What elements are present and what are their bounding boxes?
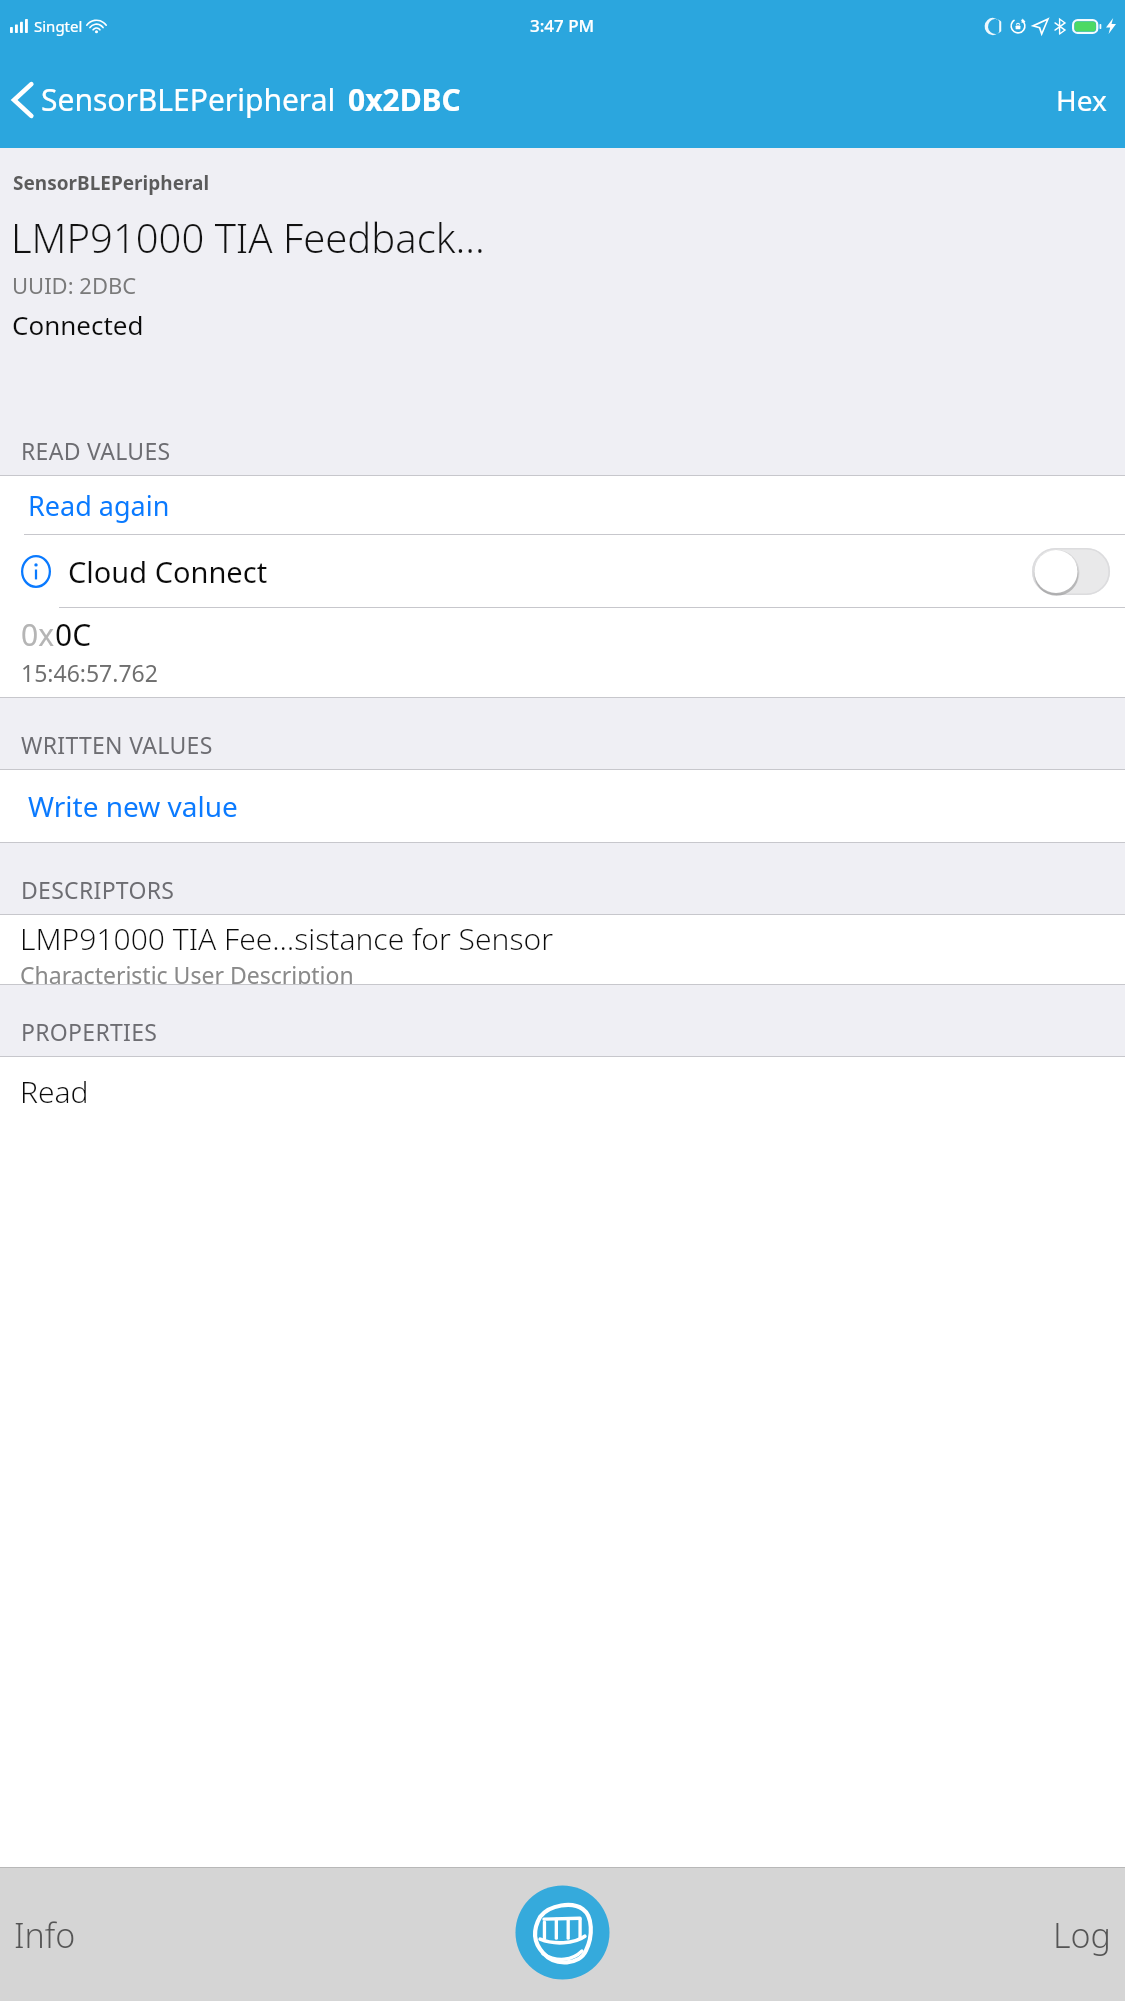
other: Info (21, 555, 51, 588)
staticText: Singtel (34, 16, 83, 36)
button[interactable]: Info (0, 1898, 100, 1972)
staticText: LMP91000 TIA Feedback… (11, 210, 485, 264)
staticText: Read again (28, 487, 170, 524)
staticText: DESCRIPTORS (21, 874, 175, 905)
staticText: 0x (21, 614, 55, 655)
other: Back (12, 82, 33, 118)
staticText: Connected (12, 307, 144, 342)
staticText: 15:46:57.762 (21, 657, 158, 688)
staticText: PROPERTIES (21, 1016, 158, 1047)
button[interactable]: Cloud Connect toggle (1032, 548, 1110, 595)
staticText: Cloud Connect (68, 552, 268, 591)
staticText: SensorBLEPeripheral (41, 79, 336, 120)
button[interactable]: Hex (1038, 69, 1125, 131)
staticText: Log (1053, 1912, 1111, 1958)
staticText: Info (14, 1912, 76, 1958)
staticText: 0C (55, 614, 92, 655)
staticText: SensorBLEPeripheral (13, 170, 210, 196)
staticText: 0x2DBC (348, 79, 461, 120)
button[interactable]: Write new value (0, 770, 1125, 842)
staticText: LMP91000 TIA Fee…sistance for Sensor (20, 918, 553, 959)
button[interactable]: Punch (515, 1885, 610, 1980)
button[interactable]: Back (0, 73, 469, 126)
staticText: READ VALUES (21, 435, 171, 466)
staticText: 3:47 PM (530, 14, 595, 37)
staticText: WRITTEN VALUES (21, 729, 213, 760)
button[interactable]: Log (1029, 1898, 1125, 1972)
button[interactable]: Read again (0, 476, 1125, 534)
button[interactable]: LMP91000 TIA Fee…sistance for Sensor (0, 915, 1125, 984)
staticText: UUID: 2DBC (12, 270, 137, 300)
staticText: Characteristic User Description (20, 959, 354, 984)
staticText: Read (20, 1071, 89, 1112)
button[interactable]: Info (0, 535, 1125, 607)
staticText: Hex (1056, 81, 1107, 119)
staticText: Write new value (28, 787, 238, 825)
